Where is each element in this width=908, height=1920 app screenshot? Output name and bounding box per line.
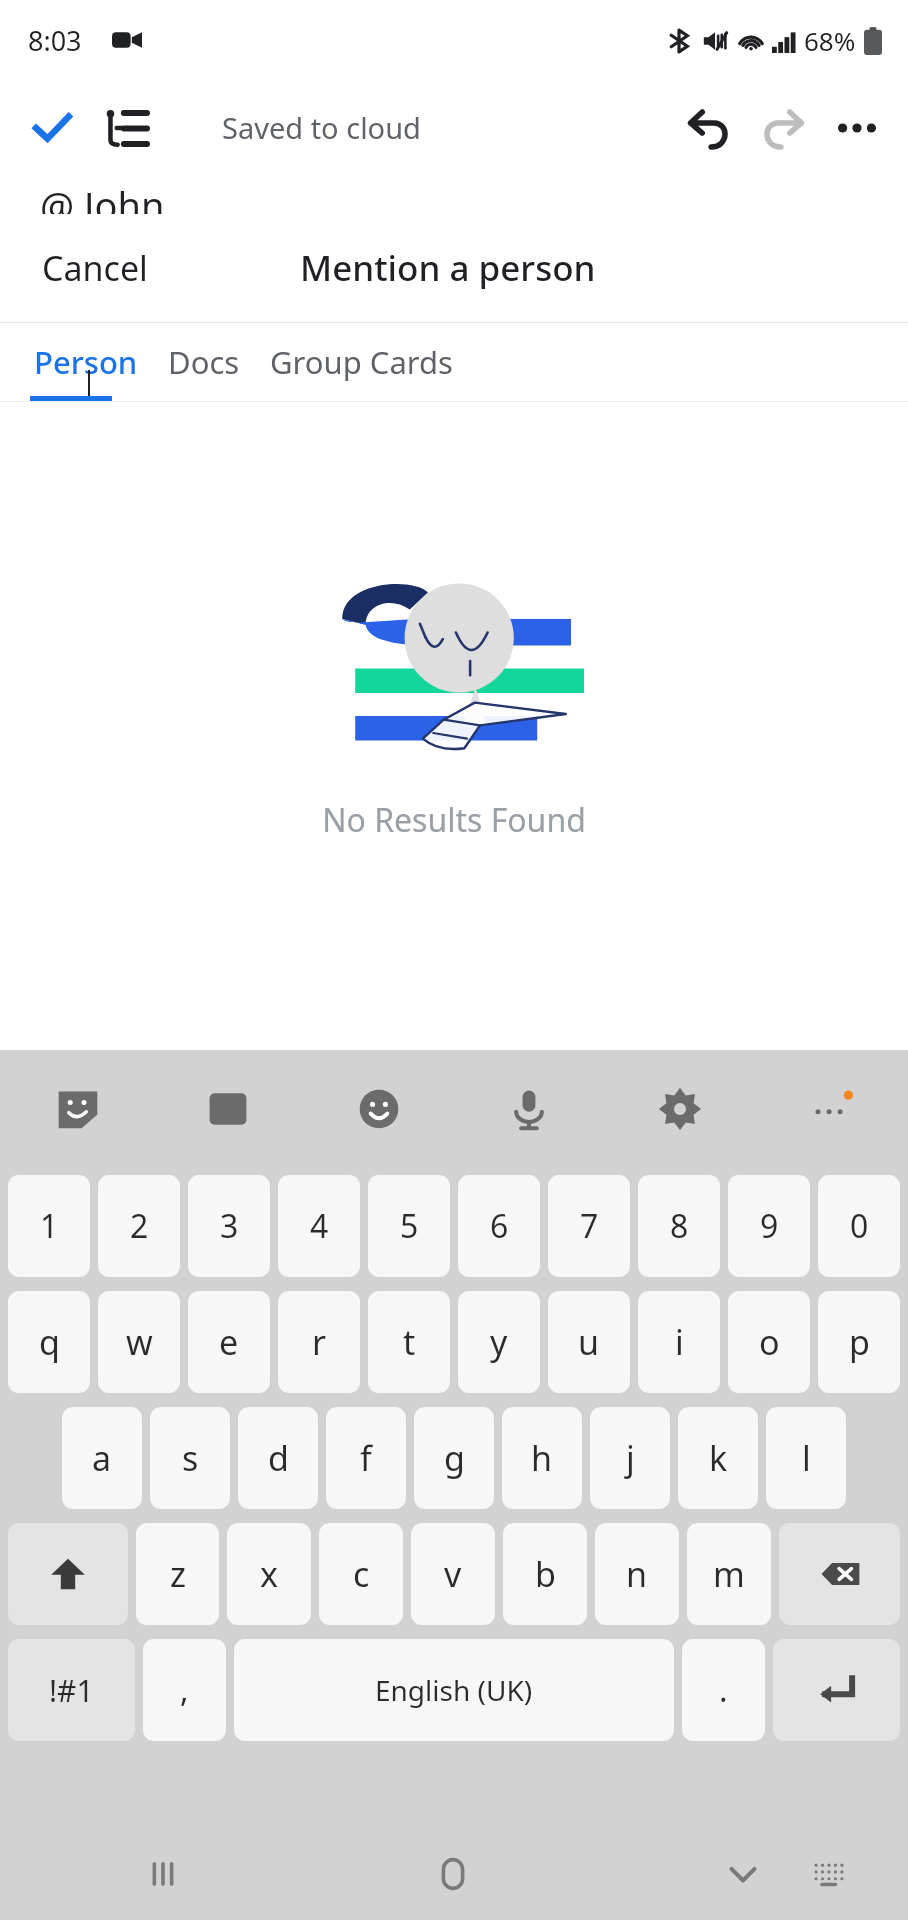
button[interactable]: Voice input [487, 1067, 571, 1151]
button[interactable]: , [143, 1639, 226, 1741]
button[interactable]: a [62, 1407, 142, 1509]
staticText: Cancel [42, 245, 148, 291]
staticText: x [260, 1551, 278, 1597]
staticText: 9 [760, 1204, 779, 1248]
staticText: 3 [220, 1204, 239, 1248]
staticText: q [39, 1319, 60, 1365]
staticText: 2 [130, 1204, 149, 1248]
button[interactable]: Done [18, 94, 86, 162]
button[interactable]: Undo [672, 91, 746, 165]
staticText: No Results Found [322, 798, 586, 842]
button[interactable]: r [278, 1291, 360, 1393]
button[interactable]: t [368, 1291, 450, 1393]
button[interactable]: x [227, 1523, 311, 1625]
button[interactable]: Switch keyboard [786, 1831, 872, 1917]
button[interactable]: l [766, 1407, 846, 1509]
button[interactable]: Group Cards [266, 323, 457, 401]
button[interactable]: 6 [458, 1175, 540, 1277]
button[interactable]: Shift [8, 1523, 128, 1625]
button[interactable]: 2 [98, 1175, 180, 1277]
button[interactable]: Cancel [18, 231, 172, 305]
button[interactable]: 7 [548, 1175, 630, 1277]
button[interactable]: e [188, 1291, 270, 1393]
button[interactable]: Outline [92, 94, 160, 162]
button[interactable]: Docs [164, 323, 244, 401]
button[interactable]: c [319, 1523, 403, 1625]
staticText: k [709, 1435, 728, 1481]
button[interactable]: More keyboard options [788, 1067, 872, 1151]
button[interactable]: p [818, 1291, 900, 1393]
button[interactable]: 0 [818, 1175, 900, 1277]
button[interactable]: n [595, 1523, 679, 1625]
staticText: p [849, 1319, 870, 1365]
staticText: c [353, 1551, 370, 1597]
staticText: r [312, 1319, 327, 1365]
button[interactable]: 5 [368, 1175, 450, 1277]
button[interactable]: s [150, 1407, 230, 1509]
button[interactable]: English (UK) [234, 1639, 674, 1741]
staticText: 1 [40, 1204, 59, 1248]
staticText: o [759, 1319, 780, 1365]
staticText: Person [34, 341, 138, 383]
button[interactable]: Backspace [779, 1523, 900, 1625]
staticText: , [180, 1668, 189, 1712]
staticText: 4 [310, 1204, 329, 1248]
staticText: d [268, 1435, 289, 1481]
staticText: 5 [400, 1204, 419, 1248]
button[interactable]: Person [30, 323, 142, 401]
button[interactable]: f [326, 1407, 406, 1509]
staticText: i [675, 1319, 684, 1365]
button[interactable]: b [503, 1523, 587, 1625]
button[interactable]: Hide keyboard [700, 1831, 786, 1917]
button[interactable]: m [687, 1523, 771, 1625]
button[interactable]: 8 [638, 1175, 720, 1277]
button[interactable]: v [411, 1523, 495, 1625]
staticText: e [219, 1319, 239, 1365]
staticText: a [92, 1435, 112, 1481]
button[interactable]: j [590, 1407, 670, 1509]
button[interactable]: q [8, 1291, 90, 1393]
button[interactable]: Home [410, 1831, 496, 1917]
button[interactable]: y [458, 1291, 540, 1393]
button[interactable]: 9 [728, 1175, 810, 1277]
staticText: z [170, 1551, 186, 1597]
button[interactable]: Enter [773, 1639, 900, 1741]
button[interactable]: Recent apps [120, 1831, 206, 1917]
staticText: @ John [40, 179, 165, 231]
staticText: English (UK) [375, 1671, 533, 1709]
button[interactable]: i [638, 1291, 720, 1393]
staticText: w [126, 1319, 153, 1365]
staticText: h [531, 1435, 553, 1481]
staticText: 8 [670, 1204, 689, 1248]
button[interactable]: Keyboard settings [638, 1067, 722, 1151]
button[interactable]: u [548, 1291, 630, 1393]
staticText: g [444, 1435, 465, 1481]
button[interactable]: Emoji [337, 1067, 421, 1151]
staticText: 7 [580, 1204, 599, 1248]
button[interactable]: d [238, 1407, 318, 1509]
button[interactable]: GIF [186, 1067, 270, 1151]
staticText: s [182, 1435, 199, 1481]
button[interactable]: h [502, 1407, 582, 1509]
button[interactable]: 1 [8, 1175, 90, 1277]
button[interactable]: 3 [188, 1175, 270, 1277]
button[interactable]: k [678, 1407, 758, 1509]
staticText: 68% [804, 23, 856, 58]
button[interactable]: o [728, 1291, 810, 1393]
staticText: 8:03 [28, 22, 82, 59]
button[interactable]: w [98, 1291, 180, 1393]
staticText: m [713, 1551, 745, 1597]
button[interactable]: Redo [746, 91, 820, 165]
staticText: 6 [490, 1204, 509, 1248]
button[interactable]: . [682, 1639, 765, 1741]
button[interactable]: Stickers [36, 1067, 120, 1151]
button[interactable]: More options [820, 91, 894, 165]
staticText: !#1 [49, 1670, 94, 1711]
staticText: Docs [168, 341, 240, 383]
staticText: f [360, 1435, 372, 1481]
button[interactable]: !#1 [8, 1639, 135, 1741]
button[interactable]: g [414, 1407, 494, 1509]
button[interactable]: z [136, 1523, 219, 1625]
button[interactable]: 4 [278, 1175, 360, 1277]
staticText: t [403, 1319, 416, 1365]
